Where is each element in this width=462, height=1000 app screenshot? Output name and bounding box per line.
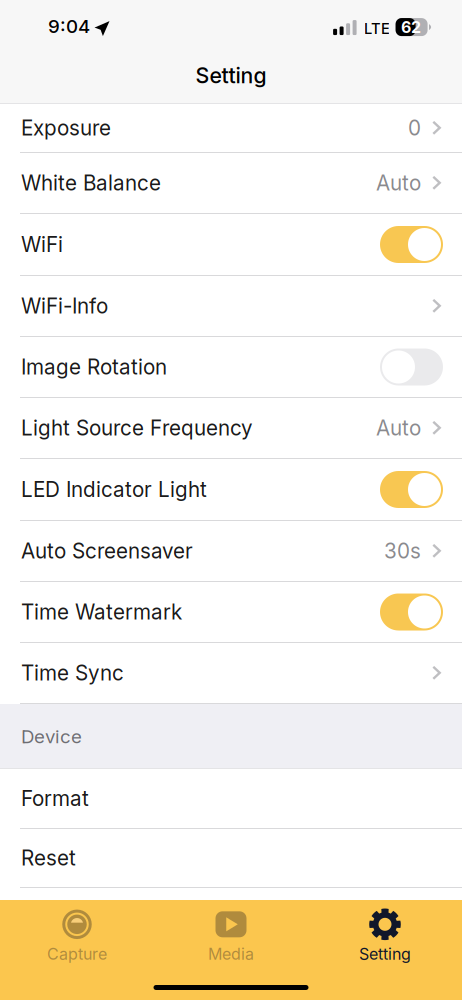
button[interactable]: Light Source Frequency [0, 398, 462, 459]
staticText: Light Source Frequency [21, 415, 253, 440]
button[interactable]: Exposure [0, 104, 462, 153]
button[interactable]: Capture [0, 905, 154, 967]
button[interactable]: Time Watermark [0, 582, 462, 643]
button[interactable]: Time Sync [0, 643, 462, 704]
staticText: Device [21, 725, 82, 748]
staticText: Image Rotation [21, 354, 167, 379]
staticText: 30s [384, 538, 421, 563]
staticText: Reset [21, 845, 76, 870]
staticText: Setting [359, 944, 411, 964]
staticText: Auto Screensaver [21, 538, 193, 563]
staticText: Time Watermark [21, 599, 182, 624]
staticText: WiFi-Info [21, 293, 108, 318]
button[interactable]: Format [0, 769, 462, 829]
staticText: Time Sync [21, 660, 124, 685]
button[interactable]: White Balance [0, 153, 462, 214]
staticText: Media [208, 944, 254, 964]
button[interactable]: LED Indicator Light [0, 459, 462, 521]
button[interactable]: Image Rotation [0, 337, 462, 398]
button[interactable]: WiFi [0, 214, 462, 276]
staticText: Setting [195, 63, 266, 88]
staticText: 62 [401, 17, 421, 37]
button[interactable]: Media [154, 905, 308, 967]
staticText: 9:04 [48, 15, 90, 38]
button[interactable]: WiFi-Info [0, 276, 462, 337]
staticText: Auto [376, 415, 421, 440]
button[interactable]: Auto Screensaver [0, 521, 462, 582]
staticText: Exposure [21, 115, 111, 140]
staticText: WiFi [21, 232, 63, 257]
staticText: LTE [364, 20, 390, 37]
staticText: 0 [408, 115, 421, 140]
staticText: Capture [47, 944, 107, 964]
button[interactable]: Reset [0, 829, 462, 888]
staticText: LED Indicator Light [21, 477, 207, 502]
button[interactable]: Setting [308, 905, 462, 967]
staticText: Auto [376, 170, 421, 195]
staticText: White Balance [21, 170, 161, 195]
staticText: Format [21, 786, 89, 811]
